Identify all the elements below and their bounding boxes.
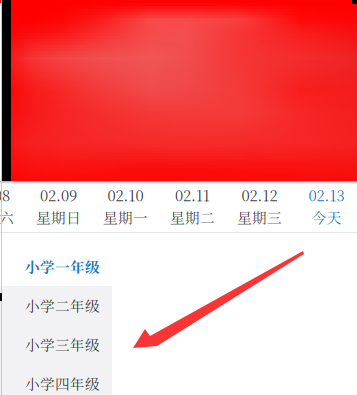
button[interactable]: 02.08 (0, 184, 25, 228)
staticText: 02.13 (308, 184, 344, 205)
staticText: 小学一年级 (25, 256, 100, 277)
staticText: 小学三年级 (25, 334, 100, 355)
staticText: 02.10 (107, 184, 143, 205)
staticText: 小学四年级 (25, 373, 100, 394)
button[interactable]: 小学一年级 (0, 247, 112, 286)
button[interactable]: 02.10 (92, 184, 159, 228)
staticText: 02.11 (175, 184, 210, 205)
button[interactable]: 02.09 (25, 184, 92, 228)
button[interactable]: 小学四年级 (0, 364, 112, 395)
button[interactable]: 小学二年级 (0, 286, 112, 325)
button[interactable]: 02.13 (293, 184, 357, 228)
staticText: 02.09 (40, 184, 77, 205)
staticText: 小学二年级 (25, 295, 100, 316)
button[interactable]: 02.11 (159, 184, 226, 228)
staticText: 02.12 (241, 184, 277, 205)
staticText: 02.08 (0, 184, 10, 205)
staticText: 星期六 (0, 206, 14, 228)
button[interactable]: 02.12 (226, 184, 293, 228)
staticText: 今天 (311, 206, 341, 228)
staticText: 星期日 (36, 206, 81, 228)
staticText: 星期一 (103, 206, 148, 228)
button[interactable]: 小学三年级 (0, 325, 112, 364)
staticText: 星期二 (170, 206, 215, 228)
staticText: 星期三 (237, 206, 282, 228)
